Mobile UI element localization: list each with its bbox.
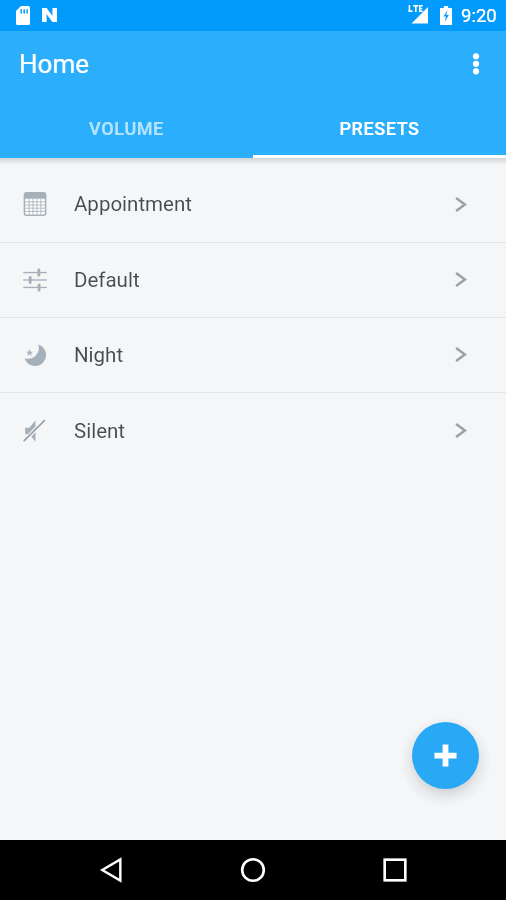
button[interactable]: VOLUME [0,102,253,154]
button[interactable]: Home [229,846,277,894]
staticText: Home [19,49,89,79]
button[interactable]: Default [0,242,506,317]
staticText: VOLUME [89,118,164,139]
button[interactable]: Back [87,846,135,894]
staticText: Default [74,268,140,292]
staticText: 9:20 [461,5,497,27]
staticText: PRESETS [339,118,420,139]
button[interactable]: PRESETS [253,102,506,154]
staticText: Night [74,343,124,367]
button[interactable]: Silent [0,392,506,469]
staticText: Silent [74,419,126,443]
button[interactable]: Add preset [412,722,479,789]
staticText: Appointment [74,192,192,216]
button[interactable]: More options [446,38,506,90]
button[interactable]: Recents [371,846,419,894]
button[interactable]: Appointment [0,166,506,242]
button[interactable]: Night [0,317,506,392]
